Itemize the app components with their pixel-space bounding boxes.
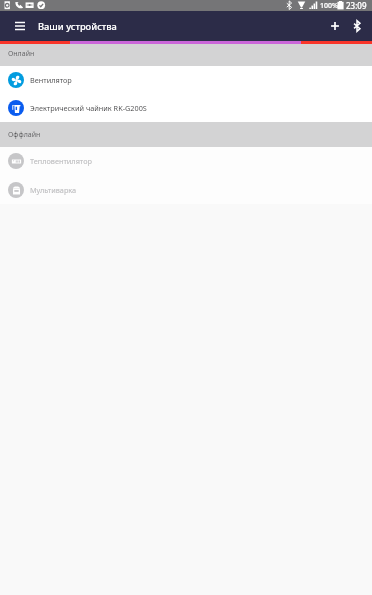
button[interactable]: Add device (321, 11, 348, 41)
staticText: Онлайн (8, 49, 35, 59)
staticText: Электрический чайник RK-G200S (30, 103, 147, 113)
staticText: 100% (320, 1, 338, 11)
button[interactable]: Вентилятор (0, 66, 372, 94)
button[interactable]: Тепловентилятор (0, 147, 372, 175)
staticText: Вентилятор (30, 75, 72, 85)
staticText: Мультиварка (30, 185, 77, 195)
staticText: Ваши устройства (38, 20, 117, 33)
staticText: Оффлайн (8, 130, 41, 140)
button[interactable]: Bluetooth (343, 11, 370, 41)
button[interactable]: Мультиварка (0, 176, 372, 204)
staticText: Тепловентилятор (30, 156, 92, 166)
button[interactable]: Электрический чайник RK-G200S (0, 94, 372, 122)
button[interactable]: Open navigation menu (0, 11, 40, 41)
staticText: 23:09 (346, 0, 367, 11)
